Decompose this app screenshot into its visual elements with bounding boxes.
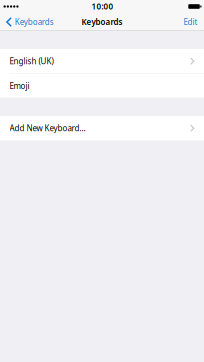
button[interactable]: English (UK): [0, 49, 204, 74]
staticText: Add New Keyboard...: [9, 123, 85, 133]
staticText: Keyboards: [15, 17, 54, 27]
button[interactable]: Keyboards: [0, 13, 58, 31]
button[interactable]: Edit: [177, 13, 204, 31]
button[interactable]: Add New Keyboard...: [0, 116, 204, 140]
staticText: Emoji: [9, 80, 29, 91]
staticText: English (UK): [9, 56, 53, 66]
staticText: Keyboards: [81, 17, 122, 27]
staticText: 10:00: [91, 1, 113, 12]
staticText: Edit: [183, 17, 197, 27]
button[interactable]: Emoji: [0, 74, 204, 98]
